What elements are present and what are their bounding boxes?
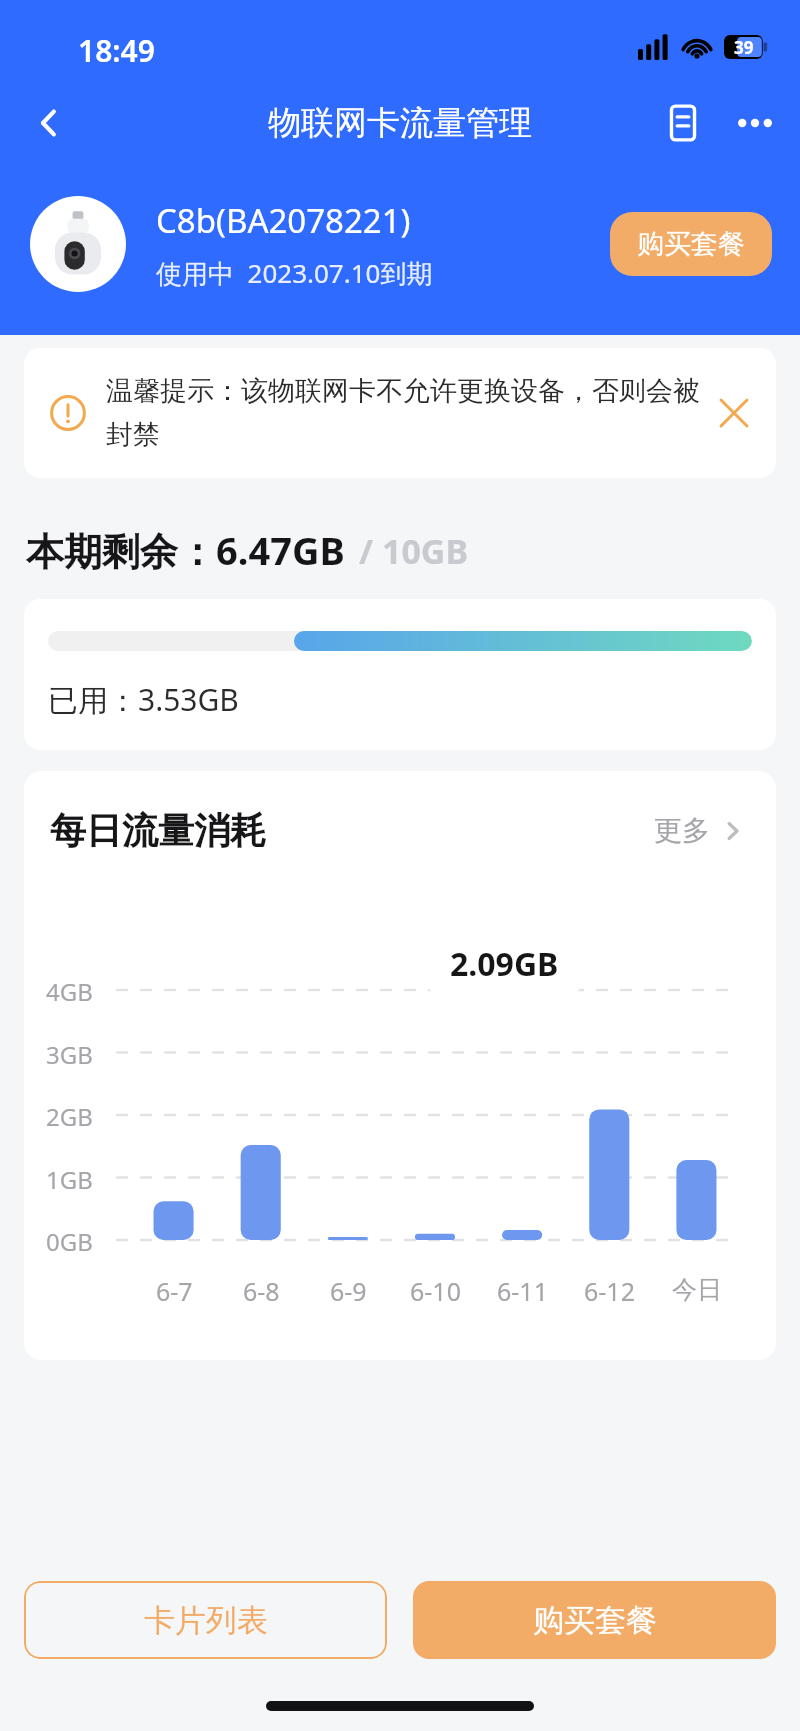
staticText: 18:49 bbox=[78, 30, 155, 71]
staticText: 0GB bbox=[46, 1225, 93, 1258]
staticText: 39 bbox=[734, 36, 754, 59]
button[interactable]: More options bbox=[728, 96, 782, 150]
button[interactable]: 购买套餐 bbox=[610, 212, 772, 276]
button[interactable]: Close notice bbox=[712, 391, 756, 435]
staticText: 2GB bbox=[46, 1100, 93, 1133]
staticText: 4GB bbox=[46, 975, 93, 1008]
staticText: 6-8 bbox=[243, 1274, 280, 1308]
staticText: 更多 bbox=[654, 813, 710, 848]
button[interactable]: Back bbox=[22, 96, 76, 150]
staticText: 使用中 2023.07.10到期 bbox=[156, 255, 433, 291]
staticText: 本期剩余：6.47GB bbox=[26, 524, 345, 576]
staticText: 6-12 bbox=[584, 1274, 635, 1308]
staticText: 温馨提示：该物联网卡不允许更换设备，否则会被封禁 bbox=[106, 374, 702, 452]
staticText: 物联网卡流量管理 bbox=[268, 102, 532, 144]
staticText: 购买套餐 bbox=[637, 227, 745, 261]
staticText: 6-9 bbox=[330, 1274, 367, 1308]
button[interactable]: 购买套餐 bbox=[413, 1581, 776, 1659]
staticText: 今日 bbox=[672, 1274, 722, 1305]
staticText: 3GB bbox=[46, 1038, 93, 1071]
button[interactable]: Order list bbox=[656, 96, 710, 150]
button[interactable]: 已用：3.53GB bbox=[24, 599, 776, 750]
button[interactable]: 更多 bbox=[648, 807, 750, 854]
staticText: 1GB bbox=[46, 1163, 93, 1196]
button[interactable]: 卡片列表 bbox=[24, 1581, 387, 1659]
staticText: 6-11 bbox=[497, 1274, 548, 1308]
staticText: 6-10 bbox=[410, 1274, 461, 1308]
staticText: 购买套餐 bbox=[533, 1601, 657, 1640]
staticText: 卡片列表 bbox=[144, 1601, 268, 1640]
staticText: 2.09GB bbox=[450, 942, 559, 986]
staticText: 6-7 bbox=[156, 1274, 193, 1308]
staticText: 已用：3.53GB bbox=[48, 679, 239, 720]
button[interactable]: 温馨提示：该物联网卡不允许更换设备，否则会被封禁 bbox=[24, 348, 776, 478]
staticText: C8b(BA2078221) bbox=[156, 198, 411, 243]
staticText: 每日流量消耗 bbox=[50, 808, 266, 853]
staticText: / 10GB bbox=[359, 528, 469, 574]
